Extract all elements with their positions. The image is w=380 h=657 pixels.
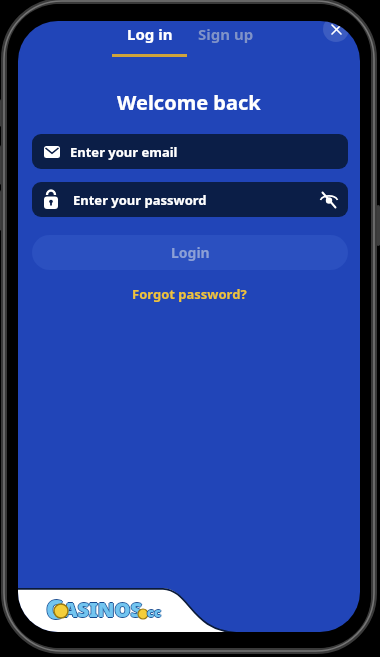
staticText: C xyxy=(46,592,63,624)
staticText: cc xyxy=(147,603,162,621)
button[interactable] xyxy=(319,190,339,210)
staticText: C xyxy=(46,590,63,622)
staticText: C xyxy=(45,591,62,623)
staticText: cc xyxy=(146,603,161,621)
staticText: Login xyxy=(171,243,210,262)
staticText: ASINOS xyxy=(63,597,143,624)
button[interactable]: Forgot password? xyxy=(18,285,360,303)
staticText: cc xyxy=(147,602,162,620)
button[interactable]: Enter your email xyxy=(32,134,348,169)
staticText: Forgot password? xyxy=(132,285,247,303)
staticText: Welcome back xyxy=(117,89,261,115)
button[interactable]: Login xyxy=(32,235,348,270)
button[interactable]: Enter your password xyxy=(32,182,348,217)
staticText: C xyxy=(47,591,64,623)
staticText: C xyxy=(46,591,63,623)
staticText: ASINOS xyxy=(63,595,143,622)
staticText: cc xyxy=(148,603,163,621)
staticText: ASINOS xyxy=(62,596,142,623)
button[interactable]: Log in xyxy=(112,21,187,49)
staticText: cc xyxy=(147,604,162,622)
staticText: ASINOS xyxy=(63,596,143,623)
staticText: ASINOS xyxy=(64,596,144,623)
button[interactable] xyxy=(323,21,349,42)
staticText: Log in xyxy=(127,24,173,44)
staticText: Enter your password xyxy=(73,191,207,209)
staticText: Enter your email xyxy=(70,143,178,161)
staticText: Sign up xyxy=(198,24,254,44)
button[interactable]: Sign up xyxy=(188,21,263,49)
